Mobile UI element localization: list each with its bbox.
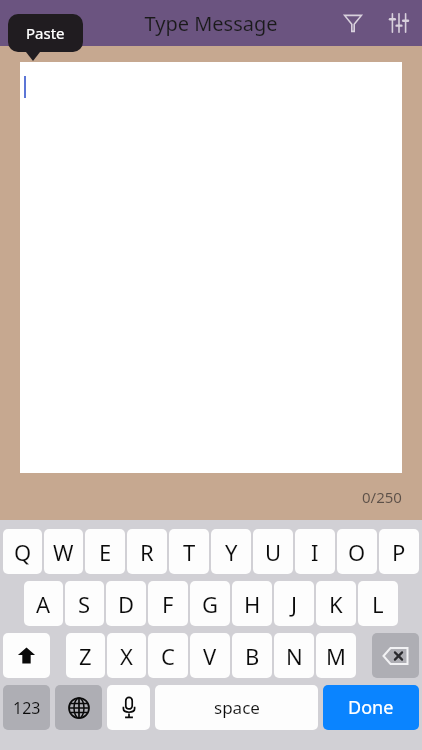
staticText: N [286, 641, 303, 671]
staticText: T [183, 537, 196, 567]
button[interactable]: L [358, 581, 398, 626]
staticText: A [36, 589, 51, 619]
button[interactable]: Settings [376, 0, 422, 46]
button[interactable]: Backspace [372, 633, 419, 678]
button[interactable]: Y [211, 529, 251, 574]
button[interactable]: S [65, 581, 104, 626]
button[interactable]: C [148, 633, 188, 678]
button[interactable]: Z [66, 633, 105, 678]
button[interactable]: B [232, 633, 272, 678]
staticText: G [202, 589, 219, 619]
staticText: R [140, 537, 154, 567]
button[interactable]: F [148, 581, 188, 626]
button[interactable]: Paste [8, 14, 83, 52]
staticText: M [326, 641, 346, 671]
button[interactable]: Done [323, 685, 419, 730]
staticText: J [291, 589, 298, 619]
button[interactable]: I [295, 529, 335, 574]
button[interactable]: V [190, 633, 230, 678]
button[interactable]: Voice input [107, 685, 150, 730]
button[interactable]: K [316, 581, 356, 626]
staticText: O [348, 537, 366, 567]
button[interactable]: T [169, 529, 209, 574]
button[interactable]: G [190, 581, 230, 626]
button[interactable]: Q [3, 529, 42, 574]
staticText: K [329, 589, 343, 619]
staticText: P [392, 537, 406, 567]
button[interactable]: P [379, 529, 419, 574]
staticText: Done [348, 695, 394, 720]
staticText: X [120, 641, 133, 671]
staticText: W [53, 537, 74, 567]
staticText: Q [14, 537, 32, 567]
staticText: F [162, 589, 174, 619]
button[interactable]: Shift [3, 633, 50, 678]
button[interactable]: U [253, 529, 293, 574]
staticText: H [244, 589, 261, 619]
staticText: V [203, 641, 217, 671]
button[interactable]: O [337, 529, 377, 574]
staticText: S [78, 589, 91, 619]
staticText: 123 [13, 697, 41, 719]
staticText: L [372, 589, 384, 619]
staticText: D [118, 589, 135, 619]
button[interactable]: H [232, 581, 272, 626]
staticText: Paste [26, 23, 65, 43]
button[interactable]: E [85, 529, 125, 574]
button[interactable]: N [274, 633, 314, 678]
button[interactable]: X [107, 633, 146, 678]
staticText: B [245, 641, 260, 671]
button[interactable]: D [106, 581, 146, 626]
staticText: Z [79, 641, 92, 671]
button[interactable]: J [274, 581, 314, 626]
staticText: E [99, 537, 112, 567]
staticText: 0/250 [362, 487, 402, 507]
staticText: space [214, 696, 260, 719]
button[interactable]: A [24, 581, 63, 626]
staticText: Y [225, 537, 238, 567]
staticText: C [161, 641, 175, 671]
staticText: Type Message [144, 10, 278, 37]
button[interactable]: 123 [3, 685, 50, 730]
button[interactable]: M [316, 633, 356, 678]
staticText: U [265, 537, 282, 567]
button[interactable]: W [44, 529, 83, 574]
staticText: I [311, 537, 319, 567]
button[interactable]: R [127, 529, 167, 574]
button[interactable]: Filter [330, 0, 376, 46]
button[interactable]: space [155, 685, 318, 730]
button[interactable]: Change keyboard language [55, 685, 102, 730]
